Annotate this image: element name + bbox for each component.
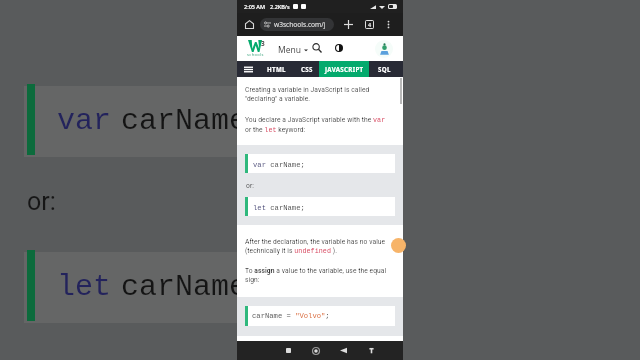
- staticText: CSS: [301, 65, 313, 73]
- staticText: or:: [246, 182, 254, 190]
- staticText: To assign a value to the variable, use t…: [245, 267, 387, 284]
- button[interactable]: Back: [334, 341, 353, 360]
- button[interactable]: Recents: [279, 341, 298, 360]
- staticText: var: [57, 104, 112, 138]
- staticText: let carName;: [253, 204, 305, 212]
- staticText: carName: [121, 104, 248, 138]
- staticText: JAVASCRIPT: [325, 65, 364, 73]
- staticText: SQL: [378, 65, 391, 73]
- staticText: After the declaration, the variable has …: [245, 238, 386, 255]
- button[interactable]: More options: [381, 17, 396, 32]
- button[interactable]: Toggle dark mode: [332, 41, 346, 55]
- staticText: 4: [368, 21, 372, 28]
- button[interactable]: w3schools.com/j: [260, 18, 334, 31]
- staticText: var carName;: [253, 161, 305, 169]
- button[interactable]: Home: [242, 17, 257, 32]
- staticText: w3schools.com/j: [274, 20, 326, 29]
- button[interactable]: Home: [306, 341, 325, 360]
- button[interactable]: HTML: [259, 61, 294, 77]
- button[interactable]: Account: [375, 40, 393, 58]
- button[interactable]: JAVASCRIPT: [319, 61, 369, 77]
- button[interactable]: New tab: [341, 17, 356, 32]
- staticText: let: [57, 270, 112, 304]
- staticText: 3: [261, 39, 265, 48]
- staticText: HTML: [267, 65, 286, 73]
- button[interactable]: Tabs: [362, 17, 377, 32]
- button[interactable]: Search: [310, 41, 324, 55]
- staticText: schools: [247, 52, 264, 57]
- button[interactable]: CSS: [294, 61, 319, 77]
- staticText: carName = "Volvo";: [252, 312, 330, 320]
- staticText: or:: [27, 187, 56, 216]
- staticText: 2.2KB/s: [270, 3, 290, 10]
- staticText: carName: [121, 270, 248, 304]
- button[interactable]: SQL: [369, 61, 399, 77]
- button[interactable]: Menu: [237, 61, 259, 77]
- button[interactable]: Keep screen on: [362, 341, 381, 360]
- button[interactable]: Menu: [276, 42, 310, 58]
- staticText: You declare a JavaScript variable with t…: [245, 116, 386, 134]
- staticText: Creating a variable in JavaScript is cal…: [245, 86, 370, 103]
- staticText: 2:05 AM: [244, 3, 266, 10]
- staticText: Menu: [278, 44, 302, 56]
